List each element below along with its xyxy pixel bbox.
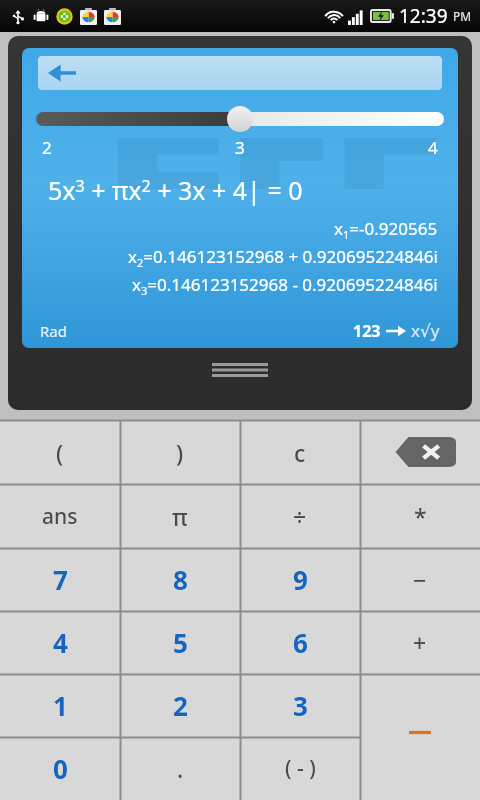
staticText: ÷ [293, 501, 307, 532]
button[interactable]: + [360, 611, 480, 674]
staticText: 2 [42, 136, 52, 159]
button[interactable]: ) [120, 420, 240, 484]
staticText: ( [56, 437, 64, 468]
button[interactable]: 8 [120, 548, 240, 611]
staticText: 12:39 [399, 3, 448, 29]
staticText: 2 [173, 688, 188, 723]
staticText: * [414, 501, 427, 532]
button[interactable]: Equals [360, 737, 480, 800]
button[interactable]: Degree slider [227, 106, 253, 132]
staticText: x3=0.146123152968 - 0.920695224846i [132, 273, 438, 298]
button[interactable]: ans [0, 484, 120, 548]
staticText: . [177, 753, 184, 784]
staticText: + [413, 627, 427, 658]
button[interactable]: 3 [240, 674, 360, 737]
button[interactable]: Rad [40, 321, 67, 341]
button[interactable]: 2 [120, 674, 240, 737]
button[interactable]: * [360, 484, 480, 548]
staticText: 0 [53, 751, 68, 786]
staticText: 5 [173, 625, 188, 660]
button[interactable]: 4 [0, 611, 120, 674]
button[interactable]: ÷ [240, 484, 360, 548]
button[interactable]: 7 [0, 548, 120, 611]
staticText: x1=-0.920565 [334, 217, 438, 242]
button[interactable]: 0 [0, 737, 120, 800]
staticText: 1 [53, 688, 68, 723]
button[interactable]: Switch keypad [353, 319, 440, 342]
staticText: 8 [173, 562, 188, 597]
staticText: x√y [411, 319, 440, 342]
staticText: π [172, 501, 188, 532]
button[interactable]: Equals [360, 674, 480, 737]
staticText: c [294, 437, 306, 468]
staticText: x2=0.146123152968 + 0.920695224846i [128, 245, 438, 270]
button[interactable]: 5 [120, 611, 240, 674]
button[interactable]: c [240, 420, 360, 484]
staticText: 3 [235, 136, 245, 159]
button[interactable]: − [360, 548, 480, 611]
button[interactable]: π [120, 484, 240, 548]
button[interactable]: . [120, 737, 240, 800]
staticText: 7 [53, 562, 68, 597]
staticText: ans [42, 502, 78, 531]
button[interactable]: ( [0, 420, 120, 484]
staticText: 9 [293, 562, 308, 597]
staticText: 4 [53, 625, 68, 660]
button[interactable]: Backspace [360, 420, 480, 484]
staticText: PM [453, 8, 472, 24]
staticText: 6 [293, 625, 308, 660]
staticText: 5x3 + πx2 + 3x + 4| = 0 [48, 173, 303, 207]
button[interactable]: 1 [0, 674, 120, 737]
button[interactable]: ( - ) [240, 737, 360, 800]
staticText: − [413, 564, 427, 595]
staticText: ( - ) [285, 754, 316, 783]
staticText: 4 [428, 136, 438, 159]
staticText: 3 [293, 688, 308, 723]
button[interactable]: 6 [240, 611, 360, 674]
staticText: ) [176, 437, 184, 468]
button[interactable]: Back [38, 56, 442, 90]
staticText: 123 [353, 320, 381, 342]
button[interactable]: 9 [240, 548, 360, 611]
